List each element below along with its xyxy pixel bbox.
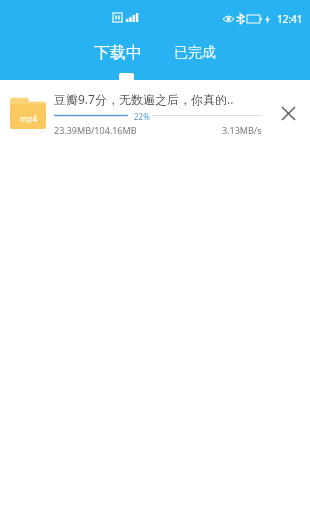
staticText: 下载中 [94, 43, 142, 63]
button[interactable]: 已完成 [169, 42, 221, 64]
staticText: 12:41 [277, 12, 303, 26]
staticText: 3.13MB/s [222, 124, 262, 136]
staticText: 已完成 [174, 44, 216, 62]
staticText: 23.39MB/104.16MB [54, 124, 137, 136]
button[interactable]: 下载中 [89, 41, 147, 65]
button[interactable]: mp4 [0, 80, 310, 146]
button[interactable]: Cancel download [270, 95, 306, 131]
staticText: 豆瓣9.7分，无数遍之后，你真的.. [54, 91, 234, 107]
staticText: 22% [134, 111, 150, 120]
staticText: mp4 [20, 113, 37, 124]
